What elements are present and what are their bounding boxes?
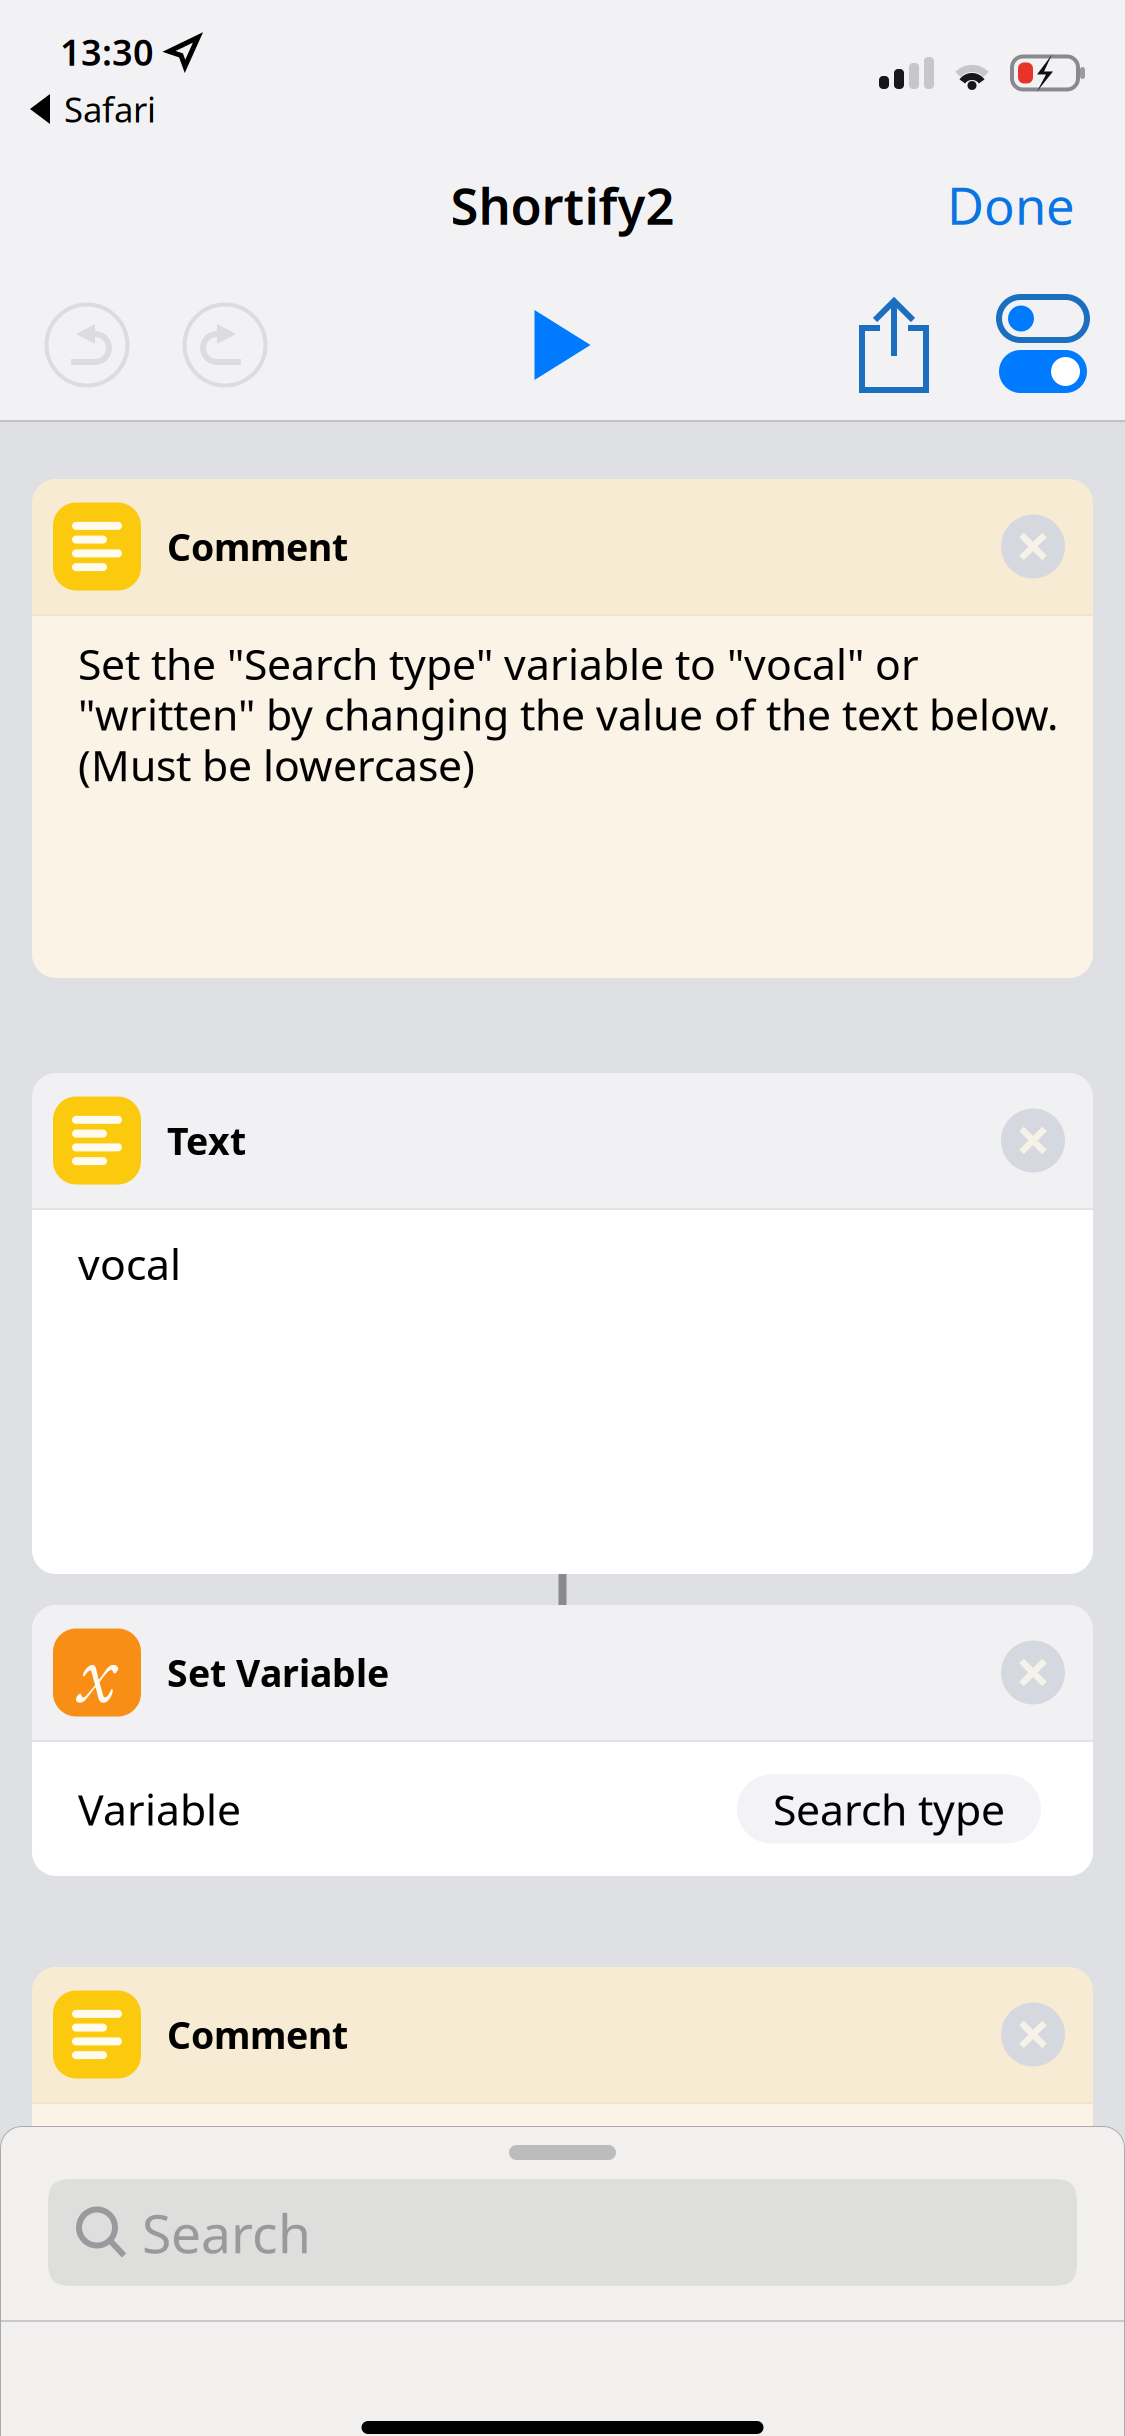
button[interactable]: Remove Text: [1001, 1108, 1065, 1172]
staticText: 13:30: [60, 28, 154, 76]
staticText: Done: [947, 171, 1075, 239]
staticText: Text: [167, 1116, 246, 1165]
staticText: Variable: [78, 1781, 241, 1837]
button[interactable]: Done: [923, 153, 1099, 257]
button[interactable]: Safari: [0, 8, 156, 132]
staticText: x: [77, 1613, 116, 1728]
staticText: Set the "Search type" variable to "vocal…: [78, 635, 919, 692]
staticText: Comment: [167, 522, 348, 571]
button[interactable]: Share: [859, 297, 929, 393]
button[interactable]: Search type: [737, 1774, 1041, 1843]
staticText: Set Variable: [167, 1648, 389, 1697]
staticText: (Must be lowercase): [78, 736, 475, 793]
button[interactable]: Shortcut settings: [999, 297, 1087, 393]
button[interactable]: Run shortcut: [510, 288, 614, 402]
staticText: "written" by changing the value of the t…: [78, 686, 1058, 742]
staticText: Shortify2: [450, 171, 674, 239]
staticText: vocal: [78, 1235, 181, 1292]
button[interactable]: Remove Comment: [1001, 514, 1065, 578]
button[interactable]: Remove Set Variable: [1001, 1640, 1065, 1704]
button[interactable]: Remove Comment: [1001, 2002, 1065, 2066]
staticText: Search type: [773, 1781, 1005, 1837]
button[interactable]: Redo: [182, 302, 268, 388]
staticText: Safari: [64, 86, 156, 132]
staticText: Search: [142, 2197, 311, 2268]
button[interactable]: Undo: [44, 302, 130, 388]
button[interactable]: Search: [48, 2179, 1077, 2286]
staticText: Comment: [167, 2010, 348, 2059]
